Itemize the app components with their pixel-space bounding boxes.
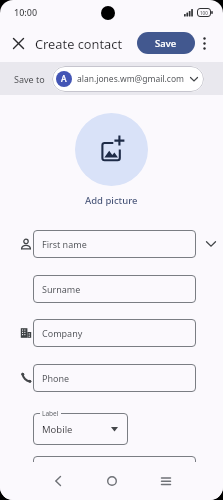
button[interactable]	[48, 471, 68, 491]
button[interactable]	[205, 238, 217, 250]
button[interactable]	[199, 33, 209, 53]
button[interactable]: Surname	[33, 275, 196, 303]
button[interactable]: Mobile	[33, 413, 128, 445]
button[interactable]	[156, 471, 176, 491]
button[interactable]: Save	[137, 32, 195, 54]
staticText: 100	[200, 10, 208, 16]
staticText: First name	[42, 238, 87, 250]
button[interactable]	[10, 35, 26, 51]
staticText: 10:00	[14, 6, 38, 18]
button[interactable]	[75, 113, 148, 186]
staticText: Phone	[42, 372, 70, 384]
staticText: alan.jones.wm@gmail.com	[77, 73, 185, 85]
staticText: Save to	[14, 73, 45, 85]
staticText: Create contact	[35, 35, 123, 52]
staticText: A	[61, 73, 67, 85]
staticText: Save	[155, 37, 177, 50]
staticText: Mobile	[42, 423, 73, 436]
button[interactable]: Company	[33, 319, 196, 347]
button[interactable]	[102, 471, 122, 491]
button[interactable]: First name	[33, 230, 196, 258]
staticText: Surname	[42, 283, 81, 295]
staticText: Company	[42, 327, 83, 339]
button[interactable]: A	[52, 66, 204, 92]
staticText: Add picture	[85, 194, 138, 207]
staticText: Label	[42, 409, 59, 418]
button[interactable]: Phone	[33, 364, 196, 392]
